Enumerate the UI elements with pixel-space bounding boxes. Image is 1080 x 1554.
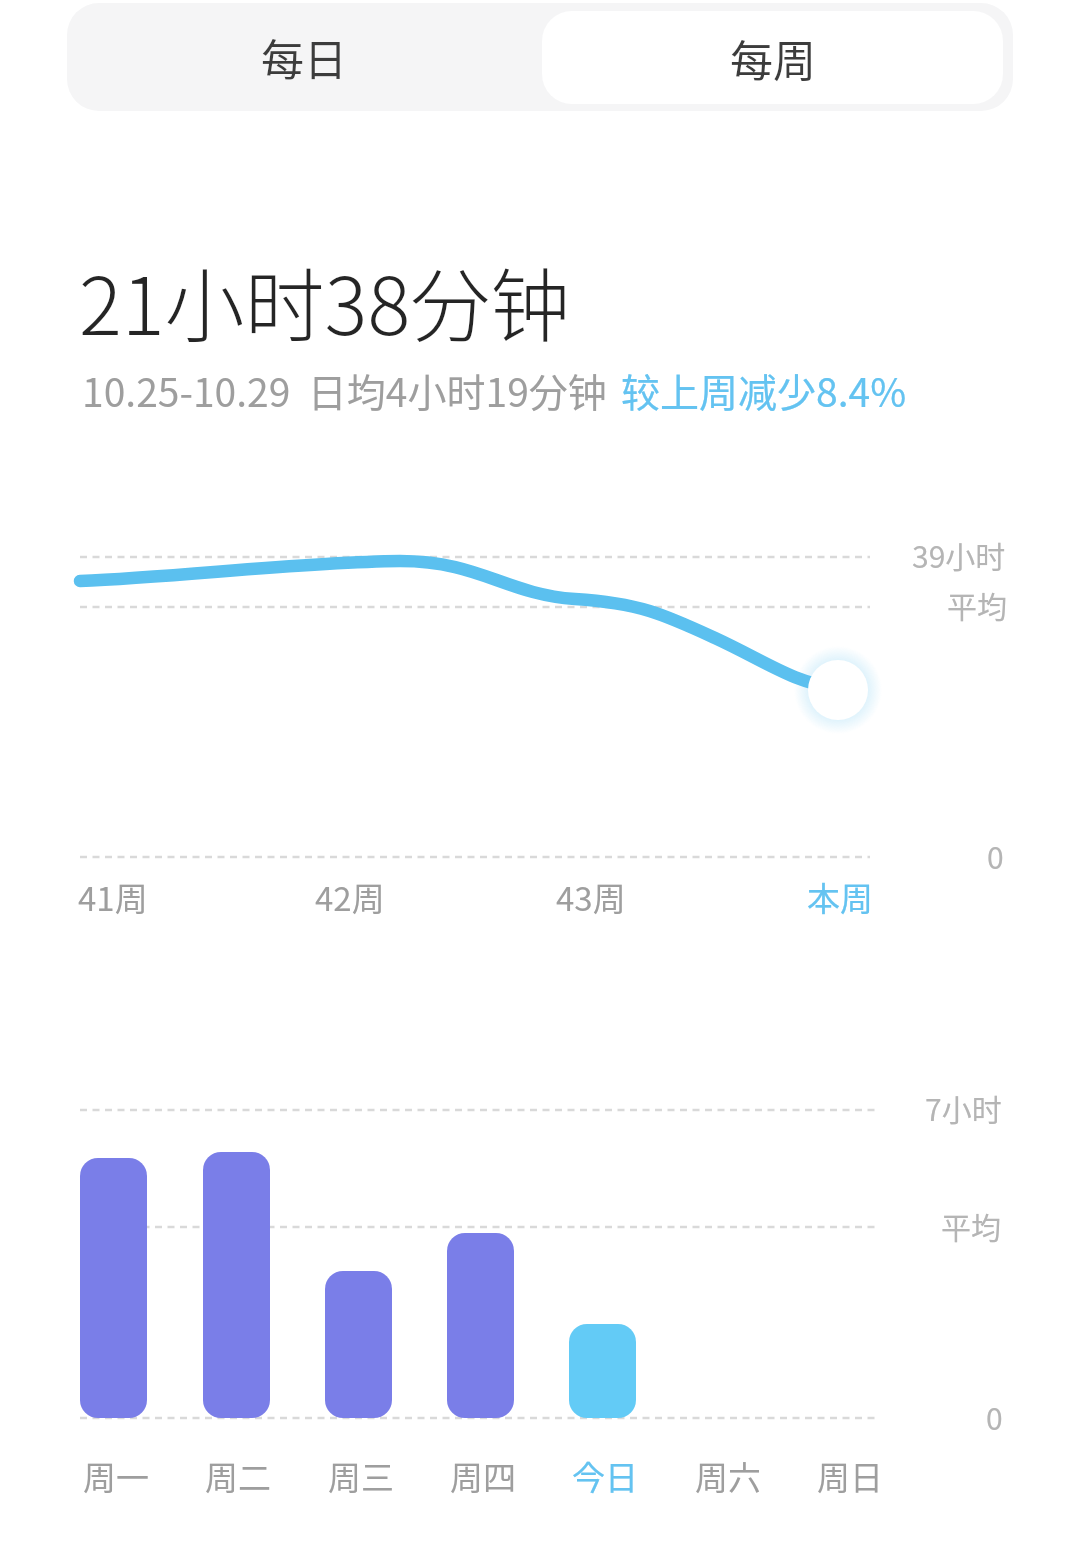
staticText: 周二 [205,1452,271,1500]
staticText: 每周 [730,27,816,89]
staticText: 本周 [807,873,873,921]
staticText: 每日 [261,26,347,88]
staticText: 周日 [817,1452,883,1500]
staticText: 0 [986,1395,1003,1438]
staticText: 21小时38分钟 [79,242,571,358]
staticText: 平均 [941,1204,1001,1247]
staticText: 10.25-10.29 日均4小时19分钟 [82,362,607,418]
staticText: 42周 [315,873,385,921]
staticText: 周四 [450,1452,516,1500]
staticText: 41周 [78,873,148,921]
staticText: 较上周减少8.4% [621,362,907,418]
staticText: 39小时 [912,533,1006,576]
staticText: 7小时 [925,1086,1002,1129]
staticText: 周三 [328,1452,394,1500]
staticText: 周一 [83,1452,149,1500]
staticText: 43周 [556,873,626,921]
staticText: 平均 [947,583,1007,626]
staticText: 今日 [572,1452,638,1500]
staticText: 0 [987,834,1004,877]
button[interactable]: 每日 [67,3,540,111]
staticText: 周六 [695,1452,761,1500]
button[interactable]: 每周 [542,11,1003,104]
